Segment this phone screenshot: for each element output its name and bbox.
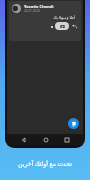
staticText: 24-07-2024 (24, 9, 40, 13)
button[interactable]: Yasmin Chandi (9, 1, 81, 41)
button[interactable]: Home (41, 135, 50, 144)
staticText: أهلا وسهلا بك (9, 15, 75, 20)
button[interactable]: Camera (55, 22, 69, 30)
button[interactable]: Back (19, 135, 28, 144)
button[interactable]: More options (48, 23, 55, 30)
button[interactable]: Reply (70, 22, 78, 30)
staticText: تحدث مع أولئك آخرين (0, 160, 90, 168)
button[interactable]: New message (68, 118, 79, 129)
button[interactable]: Recent apps (62, 135, 71, 144)
staticText: Yasmin Chandi (24, 4, 54, 9)
